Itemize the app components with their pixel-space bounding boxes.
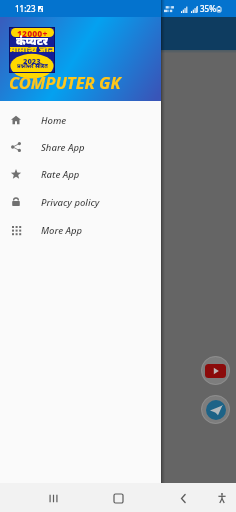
- staticText: 11:23: [15, 3, 36, 14]
- staticText: 12000+: [17, 28, 48, 37]
- staticText: प्रश्नोत्तर सहित: [17, 62, 48, 68]
- staticText: COMPUTER GK: [9, 71, 121, 93]
- staticText: कंप्यूटर: [16, 33, 48, 45]
- staticText: Privacy policy: [41, 196, 100, 209]
- button[interactable]: Privacy policy: [0, 188, 161, 216]
- staticText: Rate App: [41, 168, 80, 181]
- staticText: Home: [41, 114, 67, 127]
- button[interactable]: Home: [0, 106, 161, 134]
- button[interactable]: Recent apps: [45, 490, 61, 506]
- staticText: More App: [41, 224, 83, 237]
- staticText: 2023: [23, 56, 41, 66]
- button[interactable]: Back: [175, 490, 191, 506]
- button[interactable]: Rate App: [0, 160, 161, 188]
- button[interactable]: Home: [110, 490, 126, 506]
- staticText: 35%: [200, 3, 216, 14]
- button[interactable]: YouTube: [201, 356, 230, 385]
- button[interactable]: More App: [0, 216, 161, 244]
- button[interactable]: Accessibility: [214, 490, 230, 506]
- button[interactable]: Share App: [0, 133, 161, 161]
- staticText: सामान्य ज्ञान: [9, 43, 55, 52]
- staticText: Share App: [41, 141, 85, 154]
- button[interactable]: Telegram: [201, 395, 230, 424]
